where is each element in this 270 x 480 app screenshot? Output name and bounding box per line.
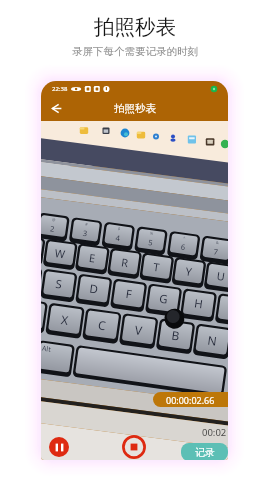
button[interactable]: 记录 (181, 443, 228, 460)
staticText: 22:38 (52, 85, 68, 93)
staticText: 00:00:02.66 (166, 394, 215, 406)
button[interactable]: Stop (122, 435, 146, 459)
staticText: 录屏下每个需要记录的时刻 (72, 45, 198, 58)
button[interactable]: Back (46, 99, 65, 118)
staticText: 拍照秒表 (94, 14, 176, 40)
staticText: 拍照秒表 (114, 102, 156, 115)
button[interactable]: Pause (49, 437, 69, 457)
staticText: 记录 (195, 446, 215, 459)
staticText: 00:02 (202, 426, 227, 439)
